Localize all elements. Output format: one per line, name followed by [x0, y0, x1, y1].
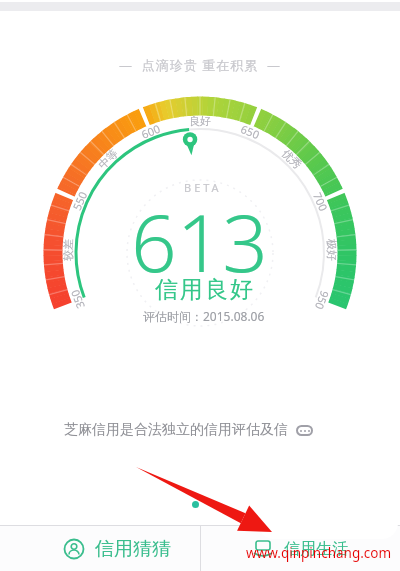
- staticText: 极好: [325, 239, 339, 261]
- staticText: 良好: [189, 114, 211, 128]
- staticText: 中等: [95, 146, 121, 172]
- staticText: www.qinpinchang.com: [246, 544, 392, 562]
- staticText: 优秀: [279, 146, 305, 172]
- staticText: 芝麻信用是合法独立的信用评估及信: [64, 421, 288, 439]
- button[interactable]: 信用猜猜: [0, 526, 200, 571]
- staticText: — 点滴珍贵 重在积累 —: [119, 56, 281, 74]
- staticText: 700: [310, 190, 331, 213]
- staticText: 613: [131, 186, 269, 274]
- staticText: 较差: [61, 239, 75, 261]
- staticText: 350: [67, 288, 88, 311]
- staticText: 650: [239, 121, 262, 142]
- button[interactable]: 芝麻信用是合法独立的信用评估及信: [64, 421, 313, 439]
- staticText: 评估时间：2015.08.06: [143, 308, 265, 324]
- staticText: BETA: [184, 180, 222, 195]
- button[interactable]: 信用生活: [200, 526, 400, 571]
- staticText: 信用猜猜: [95, 537, 171, 561]
- staticText: 信用良好: [154, 275, 254, 303]
- staticText: 信用生活: [284, 539, 348, 559]
- staticText: 600: [139, 121, 162, 142]
- staticText: 950: [312, 289, 333, 312]
- staticText: 550: [69, 189, 90, 212]
